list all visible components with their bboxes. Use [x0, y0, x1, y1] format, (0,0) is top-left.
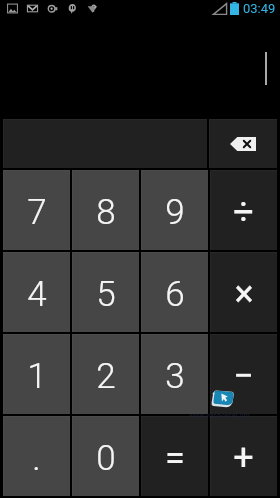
button[interactable]: 1: [3, 334, 70, 414]
staticText: ÷: [233, 191, 254, 233]
button[interactable]: 9: [141, 170, 208, 250]
button[interactable]: Delete: [209, 119, 277, 168]
staticText: +: [233, 437, 254, 479]
button[interactable]: 7: [3, 170, 70, 250]
staticText: =: [165, 437, 185, 479]
button[interactable]: .: [3, 416, 70, 496]
button[interactable]: 2: [72, 334, 139, 414]
staticText: 9: [165, 192, 185, 233]
staticText: 8: [96, 192, 116, 233]
staticText: 6: [165, 274, 185, 315]
staticText: 1: [27, 356, 47, 397]
staticText: 03:49: [243, 1, 276, 16]
button[interactable]: 8: [72, 170, 139, 250]
button[interactable]: 5: [72, 252, 139, 332]
button[interactable]: 4: [3, 252, 70, 332]
button[interactable]: =: [141, 416, 208, 496]
staticText: ×: [234, 273, 254, 315]
button[interactable]: ×: [210, 252, 277, 332]
staticText: www.hard-reset.org: [189, 412, 250, 420]
button[interactable]: 3: [141, 334, 208, 414]
button[interactable]: +: [210, 416, 277, 496]
staticText: 3: [165, 356, 185, 397]
staticText: 2: [96, 356, 116, 397]
button[interactable]: −: [210, 334, 277, 414]
staticText: 0: [96, 438, 116, 479]
staticText: 5: [96, 274, 116, 315]
button[interactable]: 0: [72, 416, 139, 496]
staticText: −: [233, 355, 254, 397]
staticText: 7: [27, 192, 47, 233]
button[interactable]: ÷: [210, 170, 277, 250]
staticText: 4: [27, 274, 47, 315]
button[interactable]: 6: [141, 252, 208, 332]
staticText: .: [32, 438, 41, 479]
